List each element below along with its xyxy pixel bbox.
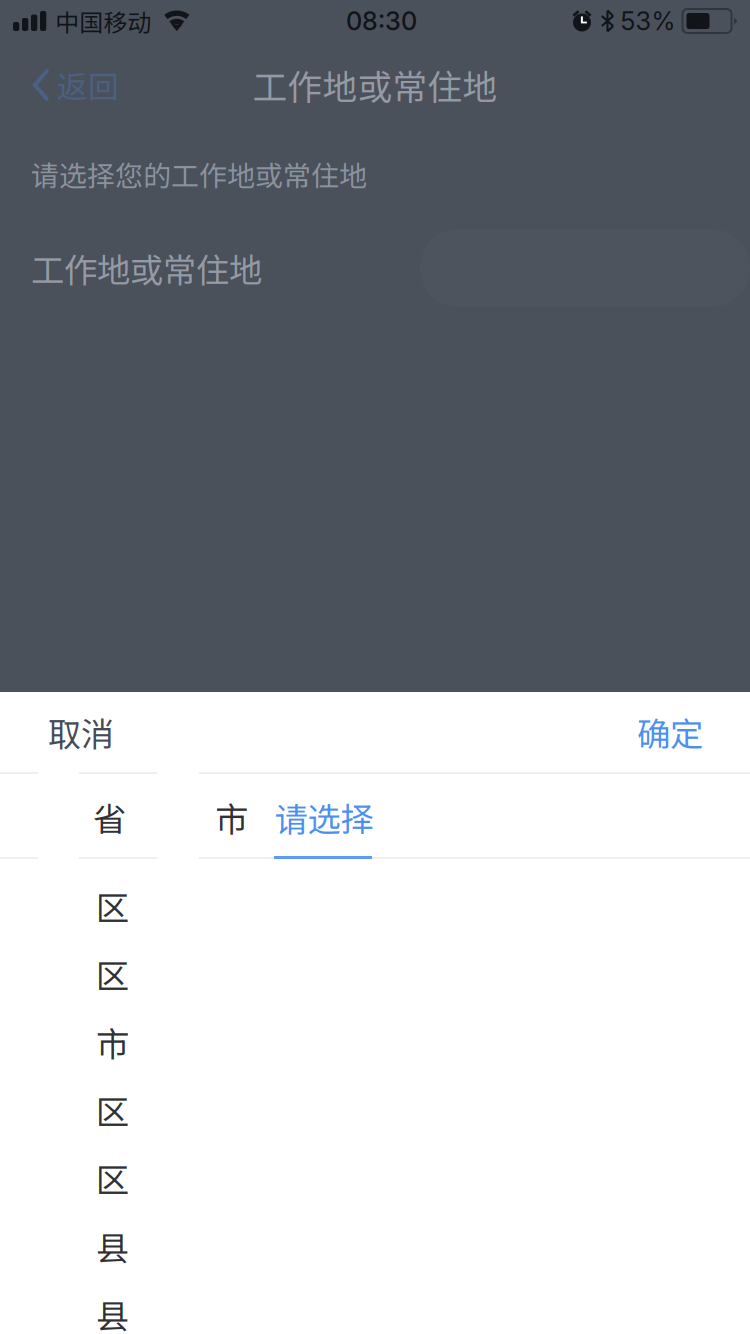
button[interactable]: 东城区 [0, 1144, 750, 1212]
staticText: 延庆县 [30, 1222, 129, 1270]
staticText: 请选择 [274, 793, 373, 841]
staticText: 08:30 [346, 6, 417, 36]
staticText: 返回 [57, 63, 119, 107]
staticText: 海淀区 [30, 882, 129, 930]
staticText: 53% [620, 6, 675, 36]
button[interactable]: 确定 [597, 692, 750, 772]
staticText: 北京市 [149, 793, 248, 841]
staticText: 请选择您的工作地或常住地 [31, 154, 367, 194]
button[interactable]: 返回 [0, 42, 143, 128]
button[interactable]: 延庆县 [0, 1212, 750, 1280]
staticText: 中国移动 [55, 4, 151, 38]
button[interactable]: 北京市 [0, 1008, 750, 1076]
staticText: 朝阳区 [30, 950, 129, 998]
staticText: 取消 [48, 708, 114, 756]
button[interactable]: 海淀区 [0, 872, 750, 940]
button[interactable]: 请选择 [0, 772, 750, 859]
staticText: 密云县 [30, 1290, 129, 1334]
staticText: 确定 [637, 708, 703, 756]
staticText: 北京市 [30, 1018, 129, 1066]
button[interactable]: 密云县 [0, 1280, 750, 1334]
button[interactable]: 朝阳区 [0, 940, 750, 1008]
staticText: 北京省 [27, 793, 126, 841]
button[interactable]: 北京市 [199, 772, 750, 859]
staticText: 东城区 [30, 1154, 129, 1202]
button[interactable]: 中国 [0, 772, 38, 859]
button[interactable]: 工作地或常住地 [0, 220, 750, 316]
button[interactable]: 西城区 [0, 1076, 750, 1144]
staticText: 工作地或常住地 [31, 244, 262, 292]
button[interactable]: 北京省 [79, 772, 157, 859]
staticText: 工作地或常住地 [252, 60, 497, 110]
button[interactable]: 取消 [0, 692, 154, 772]
staticText: 西城区 [30, 1086, 129, 1134]
